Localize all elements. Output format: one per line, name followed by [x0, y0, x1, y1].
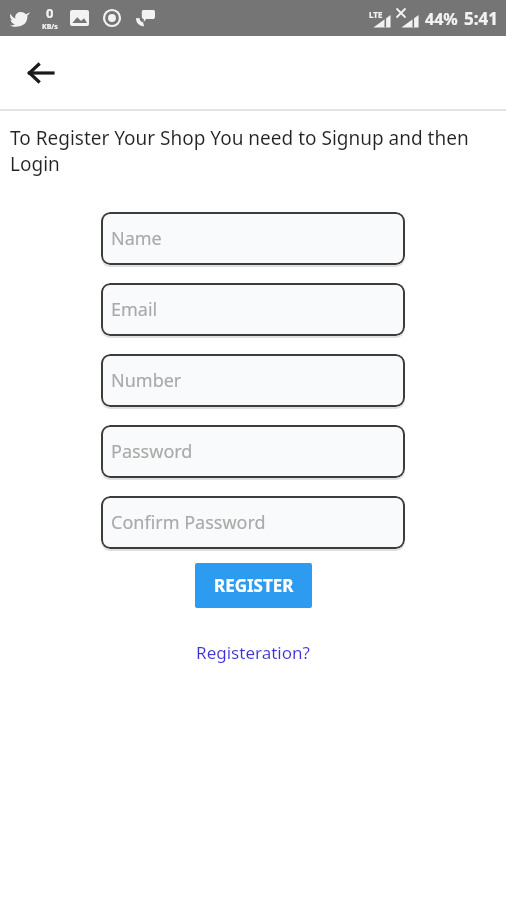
button[interactable]: Number [101, 354, 405, 409]
staticText: 44% [425, 8, 458, 30]
button[interactable]: Confirm Password [101, 496, 405, 551]
button[interactable]: Registeration? [190, 638, 316, 667]
staticText: Confirm Password [111, 510, 266, 535]
staticText: REGISTER [214, 574, 294, 597]
button[interactable]: Password [101, 425, 405, 480]
button[interactable]: Name [101, 212, 405, 267]
staticText: To Register Your Shop You need to Signup… [10, 125, 492, 176]
staticText: Number [111, 368, 182, 393]
button[interactable]: REGISTER [195, 563, 312, 608]
staticText: Password [111, 439, 193, 464]
button[interactable]: Email [101, 283, 405, 338]
staticText: Name [111, 226, 162, 251]
button[interactable]: Back [16, 49, 64, 97]
staticText: 5:41 [464, 7, 498, 30]
staticText: Email [111, 297, 158, 322]
staticText: LTE [369, 9, 383, 20]
staticText: 0 [46, 4, 54, 22]
staticText: KB/s [42, 22, 58, 32]
